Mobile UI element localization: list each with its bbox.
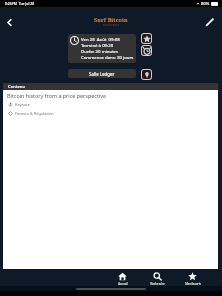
button[interactable]: Set reminder bbox=[140, 44, 152, 56]
button[interactable]: Contenu bbox=[3, 83, 218, 90]
button[interactable]: Ven 28 Août 09:08 bbox=[68, 34, 136, 63]
staticText: Accueil bbox=[118, 282, 128, 286]
button[interactable]: Mes favoris bbox=[175, 269, 210, 286]
staticText: Durée: 20 minutes bbox=[81, 48, 119, 54]
staticText: Ven 28 Août 09:08 bbox=[81, 36, 120, 42]
button[interactable]: Recherche bbox=[140, 269, 175, 286]
button[interactable]: Salle Ledger bbox=[68, 69, 136, 78]
staticText: Keynote bbox=[15, 102, 30, 107]
staticText: Finance & Régulation bbox=[15, 111, 54, 116]
staticText: Bitcoin history from a price perspective bbox=[7, 92, 106, 99]
staticText: Recherche bbox=[150, 282, 165, 286]
staticText: Contenu bbox=[8, 84, 26, 90]
staticText: Commence dans: 30 jours bbox=[81, 54, 134, 60]
staticText: 8:26PM Tue Jul 28 bbox=[5, 1, 35, 6]
staticText: conference bbox=[103, 23, 120, 27]
button[interactable]: Accueil bbox=[105, 269, 140, 286]
staticText: Surf Bitcoin bbox=[94, 16, 128, 23]
button[interactable]: Edit bbox=[201, 13, 219, 31]
button[interactable]: Favorite bbox=[140, 32, 152, 44]
staticText: Mes favoris bbox=[185, 282, 201, 286]
staticText: 80% bbox=[201, 1, 210, 7]
staticText: Terminé à 09:20 bbox=[81, 42, 114, 48]
staticText: Salle Ledger bbox=[89, 71, 115, 77]
button[interactable]: Back bbox=[0, 13, 18, 31]
button[interactable]: Location bbox=[140, 68, 152, 80]
